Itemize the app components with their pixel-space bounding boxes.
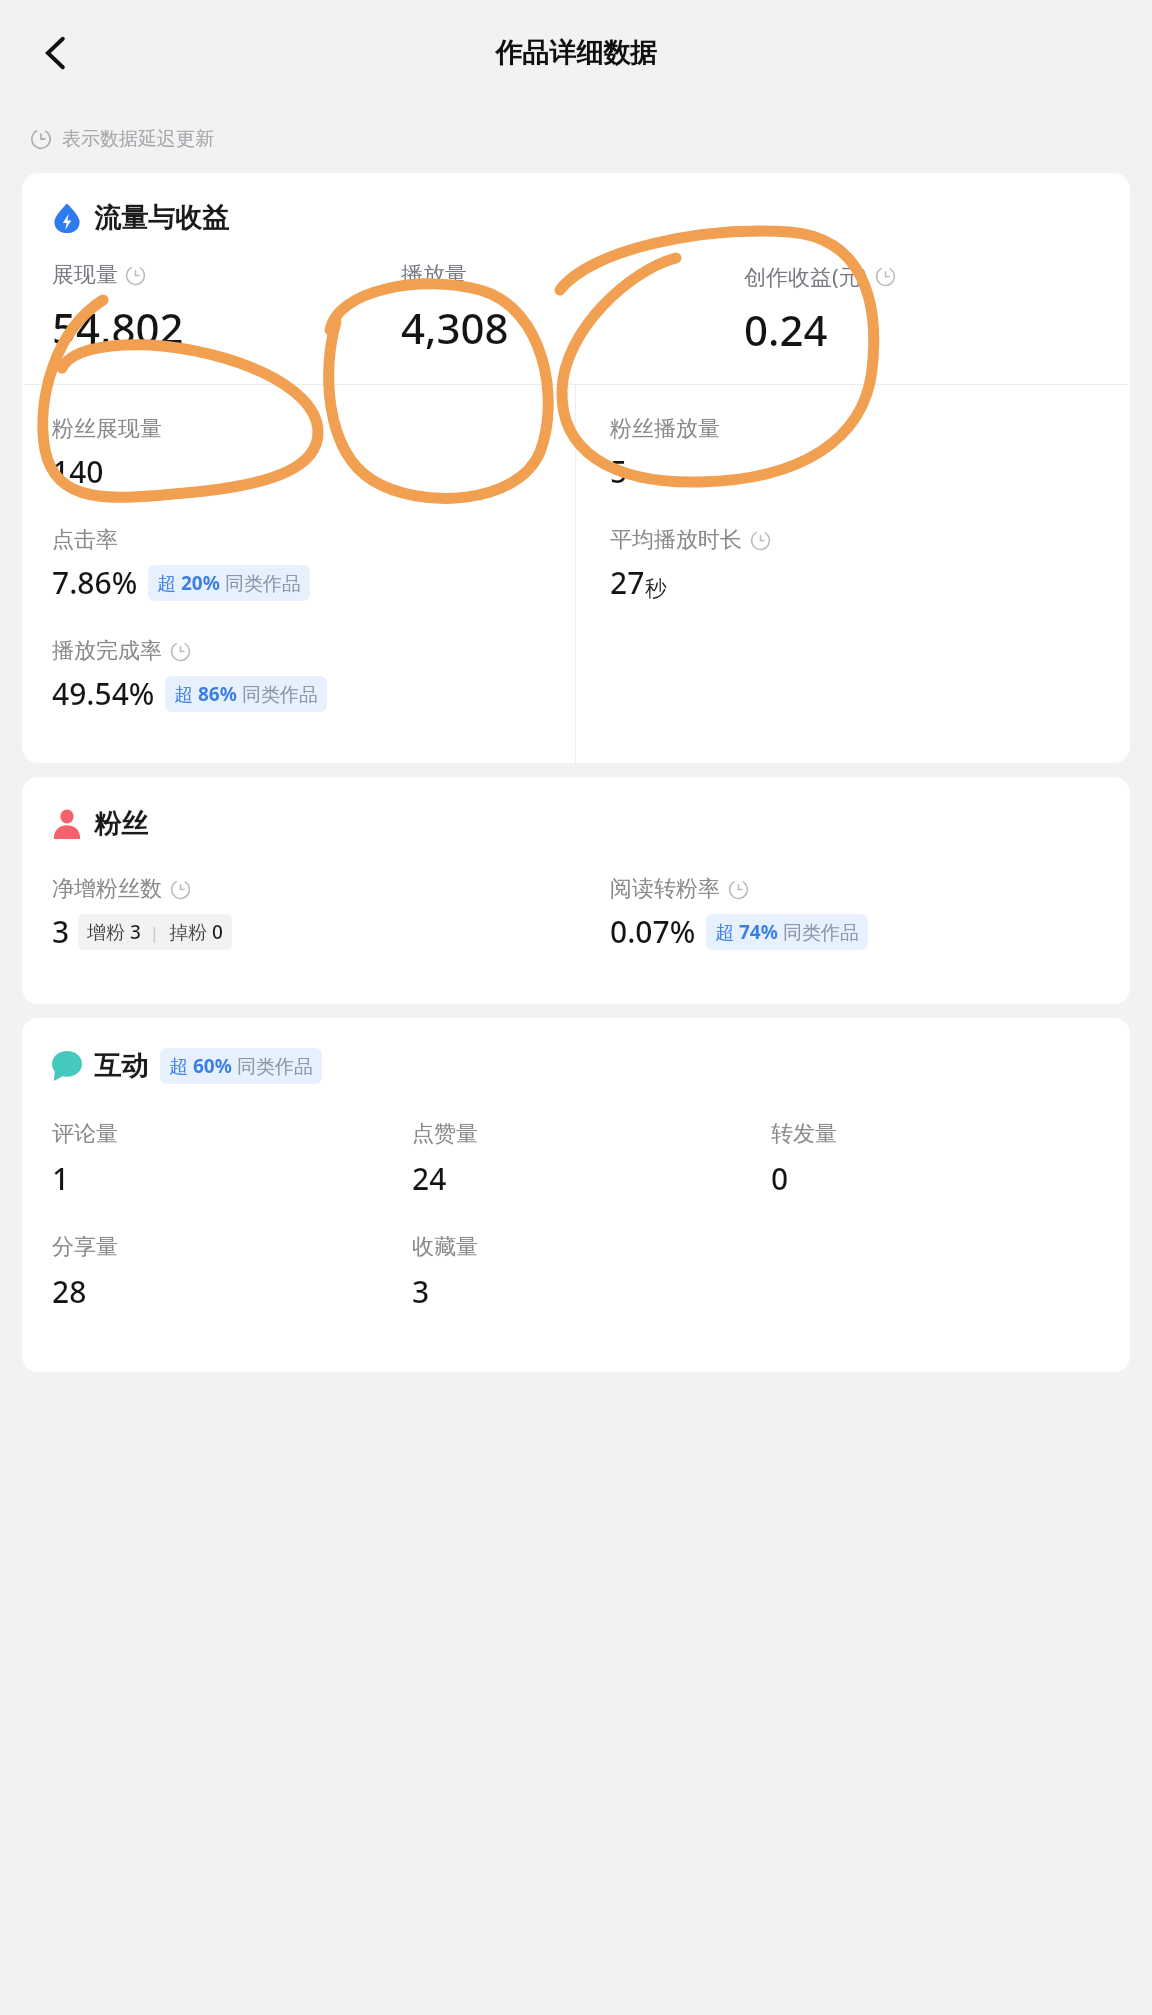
staticText: 0 xyxy=(212,919,223,945)
staticText: 60% xyxy=(193,1053,232,1079)
button[interactable]: 评论量 xyxy=(52,1120,412,1199)
staticText: 互动 xyxy=(94,1049,148,1083)
staticText: 20% xyxy=(181,570,220,596)
staticText: 评论量 xyxy=(52,1120,118,1148)
button[interactable]: 互动 xyxy=(52,1048,322,1084)
staticText: 增粉 xyxy=(87,919,130,945)
staticText: 7.86% xyxy=(52,562,138,603)
staticText: 秒 xyxy=(645,575,667,603)
staticText: 掉粉 xyxy=(169,919,212,945)
staticText: 同类作品 xyxy=(237,681,318,707)
staticText: 净增粉丝数 xyxy=(52,875,162,903)
staticText: 作品详细数据 xyxy=(495,36,657,70)
staticText: 49.54% xyxy=(52,673,155,714)
staticText: | xyxy=(141,921,169,944)
staticText: 54,802 xyxy=(52,299,184,356)
staticText: 27 xyxy=(610,562,645,603)
button[interactable]: 点击率 xyxy=(52,526,310,603)
staticText: 同类作品 xyxy=(220,570,301,596)
staticText: 140 xyxy=(52,451,104,492)
button[interactable]: 粉丝播放量 xyxy=(610,415,720,492)
staticText: 1 xyxy=(52,1158,70,1199)
button[interactable]: Back xyxy=(28,25,84,81)
staticText: 粉丝播放量 xyxy=(610,415,720,443)
button[interactable]: 粉丝 xyxy=(52,807,148,841)
staticText: 粉丝展现量 xyxy=(52,415,162,443)
staticText: 播放完成率 xyxy=(52,637,162,665)
staticText: 超 xyxy=(169,1053,193,1079)
button[interactable]: 播放完成率 xyxy=(52,637,327,714)
staticText: 3 xyxy=(130,919,141,945)
staticText: 超 xyxy=(715,919,739,945)
staticText: 0 xyxy=(771,1158,789,1199)
staticText: 74% xyxy=(739,919,778,945)
staticText: 展现量 xyxy=(52,261,118,289)
staticText: 收藏量 xyxy=(412,1233,478,1261)
staticText: 转发量 xyxy=(771,1120,837,1148)
button[interactable]: 净增粉丝数 xyxy=(52,875,232,952)
staticText: 0.07% xyxy=(610,911,696,952)
staticText: 表示数据延迟更新 xyxy=(62,127,214,151)
staticText: 超 xyxy=(157,570,181,596)
staticText: 点击率 xyxy=(52,526,118,554)
staticText: 3 xyxy=(412,1271,430,1312)
button[interactable]: 平均播放时长 xyxy=(610,526,771,603)
staticText: 阅读转粉率 xyxy=(610,875,720,903)
button[interactable]: 展现量 xyxy=(52,261,401,356)
button[interactable]: 转发量 xyxy=(771,1120,1130,1199)
staticText: 4,308 xyxy=(401,299,509,356)
staticText: 流量与收益 xyxy=(94,201,229,235)
staticText: 86% xyxy=(198,681,237,707)
staticText: 同类作品 xyxy=(232,1053,313,1079)
staticText: 28 xyxy=(52,1271,87,1312)
staticText: 播放量 xyxy=(401,261,467,289)
button[interactable]: 粉丝展现量 xyxy=(52,415,162,492)
staticText: 3 xyxy=(52,911,70,952)
staticText: 5 xyxy=(610,451,628,492)
staticText: 超 xyxy=(174,681,198,707)
staticText: 分享量 xyxy=(52,1233,118,1261)
button[interactable]: 阅读转粉率 xyxy=(610,875,868,952)
staticText: 24 xyxy=(412,1158,447,1199)
button[interactable]: 点赞量 xyxy=(412,1120,771,1199)
button[interactable]: 创作收益(元) xyxy=(744,261,1108,358)
button[interactable]: 分享量 xyxy=(52,1233,412,1312)
staticText: 同类作品 xyxy=(778,919,859,945)
staticText: 0.24 xyxy=(744,301,828,358)
button[interactable]: 流量与收益 xyxy=(52,201,229,235)
staticText: 粉丝 xyxy=(94,807,148,841)
staticText: 创作收益(元) xyxy=(744,261,868,291)
button[interactable]: 收藏量 xyxy=(412,1233,771,1312)
button[interactable]: 播放量 xyxy=(401,261,744,356)
staticText: 点赞量 xyxy=(412,1120,478,1148)
staticText: 平均播放时长 xyxy=(610,526,742,554)
